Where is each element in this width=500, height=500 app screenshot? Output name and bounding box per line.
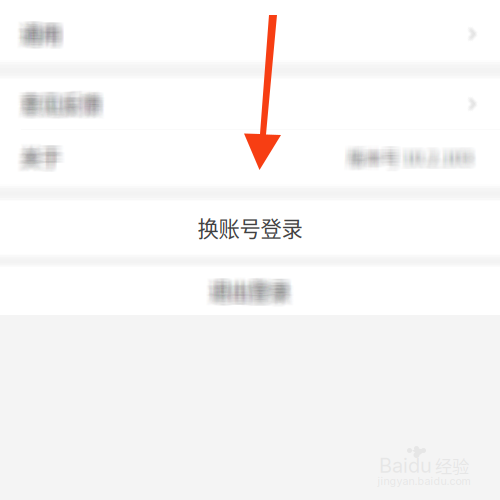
staticText: 通用 bbox=[20, 19, 60, 48]
button[interactable]: 通用 bbox=[0, 0, 500, 60]
staticText: 关于 bbox=[23, 139, 63, 168]
staticText: 退出登录 bbox=[206, 273, 286, 302]
staticText: 通用 bbox=[23, 21, 63, 50]
staticText: Baidu bbox=[379, 453, 432, 478]
staticText: 版本号 10.2.103 bbox=[344, 143, 469, 168]
staticText: 关于 bbox=[23, 145, 63, 174]
staticText: 关于 bbox=[21, 145, 61, 174]
staticText: 通用 bbox=[16, 22, 56, 51]
staticText: 关于 bbox=[23, 138, 63, 167]
staticText: 意见反馈 bbox=[23, 89, 103, 118]
staticText: 意见反馈 bbox=[19, 86, 99, 115]
staticText: 关于 bbox=[20, 145, 60, 174]
staticText: 版本号 10.2.103 bbox=[348, 140, 473, 165]
staticText: 版本号 10.2.103 bbox=[353, 147, 478, 172]
staticText: 意见反馈 bbox=[25, 94, 105, 123]
staticText: 关于 bbox=[23, 146, 63, 175]
staticText: 退出登录 bbox=[212, 274, 292, 303]
staticText: 通用 bbox=[21, 21, 61, 50]
staticText: 关于 bbox=[20, 140, 60, 169]
staticText: 关于 bbox=[23, 140, 63, 169]
staticText: 版本号 10.2.103 bbox=[343, 140, 468, 165]
staticText: 版本号 10.2.103 bbox=[352, 147, 477, 172]
staticText: 退出登录 bbox=[214, 281, 294, 310]
staticText: 意见反馈 bbox=[22, 94, 102, 123]
staticText: 版本号 10.2.103 bbox=[344, 149, 469, 174]
staticText: 意见反馈 bbox=[20, 86, 100, 115]
staticText: 意见反馈 bbox=[21, 92, 101, 121]
button[interactable]: 退出登录 bbox=[0, 267, 500, 315]
staticText: 通用 bbox=[16, 17, 56, 46]
staticText: 退出登录 bbox=[211, 275, 291, 304]
staticText: 通用 bbox=[17, 19, 57, 48]
staticText: 版本号 10.2.103 bbox=[347, 147, 472, 172]
staticText: 版本号 10.2.103 bbox=[346, 146, 471, 171]
staticText: 退出登录 bbox=[214, 280, 294, 309]
staticText: 版本号 10.2.103 bbox=[344, 140, 469, 165]
staticText: 退出登录 bbox=[212, 280, 292, 309]
staticText: 退出登录 bbox=[205, 276, 285, 305]
staticText: 版本号 10.2.103 bbox=[346, 143, 471, 168]
staticText: 通用 bbox=[23, 15, 63, 44]
staticText: 版本号 10.2.103 bbox=[348, 143, 473, 168]
staticText: 版本号 10.2.103 bbox=[350, 140, 475, 165]
staticText: 退出登录 bbox=[208, 280, 288, 309]
staticText: 关于 bbox=[26, 144, 66, 173]
button[interactable]: 换账号登录 bbox=[0, 201, 500, 254]
staticText: 退出登录 bbox=[215, 276, 295, 305]
button[interactable]: 意见反馈 bbox=[0, 79, 500, 129]
staticText: 通用 bbox=[20, 21, 60, 50]
staticText: 关于 bbox=[22, 142, 62, 171]
staticText: 退出登录 bbox=[212, 273, 292, 302]
staticText: 退出登录 bbox=[212, 278, 292, 307]
staticText: 通用 bbox=[23, 24, 63, 53]
staticText: 意见反馈 bbox=[26, 86, 106, 115]
staticText: 通用 bbox=[23, 18, 63, 47]
staticText: 退出登录 bbox=[214, 276, 294, 305]
staticText: 通用 bbox=[20, 15, 60, 44]
staticText: 版本号 10.2.103 bbox=[349, 140, 474, 165]
staticText: 通用 bbox=[16, 15, 56, 44]
staticText: 意见反馈 bbox=[21, 87, 101, 116]
staticText: 退出登录 bbox=[206, 274, 286, 303]
staticText: 通用 bbox=[21, 22, 61, 51]
staticText: 通用 bbox=[23, 19, 63, 48]
staticText: 退出登录 bbox=[208, 278, 288, 307]
staticText: 退出登录 bbox=[209, 272, 289, 301]
staticText: 退出登录 bbox=[211, 280, 291, 309]
staticText: 意见反馈 bbox=[19, 89, 99, 118]
staticText: 关于 bbox=[19, 138, 59, 167]
staticText: 退出登录 bbox=[205, 273, 285, 302]
staticText: 意见反馈 bbox=[16, 89, 96, 118]
staticText: 退出登录 bbox=[214, 272, 294, 301]
staticText: 退出登录 bbox=[205, 272, 285, 301]
staticText: 退出登录 bbox=[210, 273, 290, 302]
staticText: 意见反馈 bbox=[25, 88, 105, 117]
staticText: 关于 bbox=[17, 139, 57, 168]
staticText: 版本号 10.2.103 bbox=[347, 148, 472, 173]
staticText: 通用 bbox=[26, 21, 66, 50]
staticText: 通用 bbox=[26, 18, 66, 47]
staticText: 版本号 10.2.103 bbox=[348, 141, 473, 166]
staticText: 版本号 10.2.103 bbox=[348, 146, 473, 171]
button[interactable]: 关于 bbox=[0, 130, 500, 184]
staticText: 版本号 10.2.103 bbox=[347, 140, 472, 165]
staticText: 关于 bbox=[26, 146, 66, 175]
staticText: 退出登录 bbox=[209, 279, 289, 308]
staticText: 通用 bbox=[26, 23, 66, 52]
staticText: 关于 bbox=[17, 145, 57, 174]
staticText: 通用 bbox=[16, 24, 56, 53]
staticText: 通用 bbox=[25, 21, 65, 50]
staticText: jingyan.baidu.com bbox=[377, 474, 470, 487]
staticText: 退出登录 bbox=[208, 276, 288, 305]
staticText: 退出登录 bbox=[215, 278, 295, 307]
staticText: 退出登录 bbox=[206, 275, 286, 304]
staticText: 通用 bbox=[16, 16, 56, 45]
staticText: 通用 bbox=[23, 23, 63, 52]
staticText: 通用 bbox=[20, 18, 60, 47]
staticText: 意见反馈 bbox=[20, 88, 100, 117]
staticText: 退出登录 bbox=[214, 275, 294, 304]
staticText: 版本号 10.2.103 bbox=[353, 144, 478, 170]
staticText: 退出登录 bbox=[211, 279, 291, 308]
staticText: 版本号 10.2.103 bbox=[349, 144, 474, 170]
